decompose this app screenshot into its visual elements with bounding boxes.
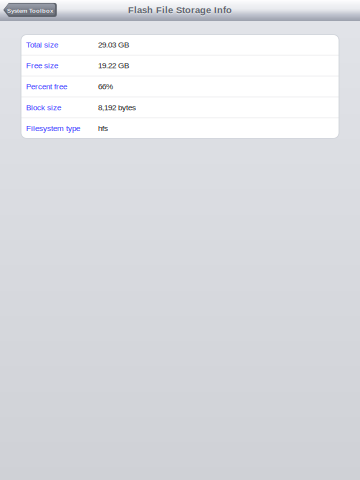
staticText: Free size [26,61,58,70]
staticText: 66% [98,82,113,91]
staticText: 29.03 GB [98,40,129,49]
staticText: Total size [26,40,58,49]
button[interactable]: System Toolbox [3,3,57,18]
staticText: Flash File Storage Info [128,5,232,15]
staticText: Percent free [26,82,67,91]
staticText: Flash File Storage Info [128,6,232,16]
staticText: Filesystem type [26,124,80,133]
staticText: System Toolbox [7,7,53,13]
staticText: System Toolbox [7,7,53,14]
staticText: 8,192 bytes [98,103,136,112]
staticText: hfs [98,124,108,133]
staticText: Block size [26,103,61,112]
staticText: 19.22 GB [98,61,129,70]
